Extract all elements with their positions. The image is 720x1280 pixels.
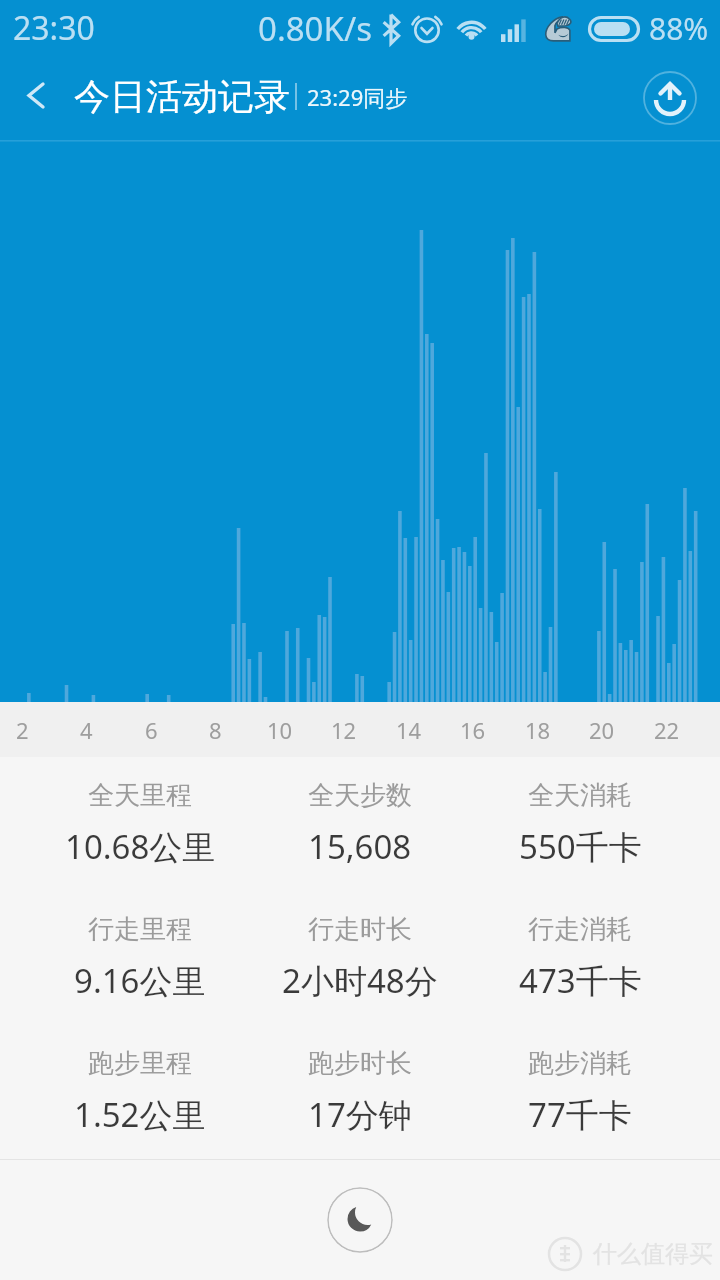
staticText: 行走时长 — [308, 913, 412, 946]
staticText: 什么值得买 — [593, 1239, 713, 1269]
staticText: 0.80K/s — [258, 6, 372, 51]
staticText: 77千卡 — [528, 1092, 632, 1137]
button[interactable]: 跑步消耗 — [470, 1025, 690, 1159]
staticText: 18 — [525, 715, 551, 745]
staticText: 全天步数 — [308, 779, 412, 812]
staticText: 今日活动记录 — [74, 74, 290, 119]
staticText: 12 — [331, 715, 357, 745]
staticText: 14 — [396, 715, 422, 745]
staticText: 行走里程 — [88, 913, 192, 946]
button[interactable]: 行走里程 — [30, 891, 250, 1025]
button[interactable]: 全天里程 — [30, 757, 250, 891]
staticText: 550千卡 — [519, 824, 642, 869]
staticText: 15,608 — [308, 824, 412, 869]
staticText: 9.16公里 — [74, 958, 206, 1003]
staticText: 跑步时长 — [308, 1047, 412, 1080]
staticText: 跑步里程 — [88, 1047, 192, 1080]
staticText: 23:29同步 — [307, 82, 408, 112]
button[interactable]: 跑步时长 — [250, 1025, 470, 1159]
button[interactable]: Sleep mode — [327, 1187, 393, 1253]
staticText: 行走消耗 — [528, 913, 632, 946]
staticText: 2 — [16, 715, 29, 745]
staticText: 10.68公里 — [65, 824, 216, 869]
staticText: 全天里程 — [88, 779, 192, 812]
staticText: 跑步消耗 — [528, 1047, 632, 1080]
staticText: 8 — [209, 715, 222, 745]
button[interactable]: 跑步里程 — [30, 1025, 250, 1159]
staticText: 20 — [589, 715, 615, 745]
staticText: 1.52公里 — [74, 1092, 206, 1137]
staticText: 23:30 — [13, 6, 95, 50]
button[interactable]: Back — [0, 56, 72, 140]
button[interactable]: 全天步数 — [250, 757, 470, 891]
button[interactable]: Sync — [635, 63, 705, 133]
button[interactable]: 全天消耗 — [470, 757, 690, 891]
staticText: 22 — [654, 715, 680, 745]
button[interactable]: 行走时长 — [250, 891, 470, 1025]
staticText: 10 — [267, 715, 293, 745]
staticText: 88% — [649, 8, 709, 49]
staticText: 4 — [80, 715, 93, 745]
staticText: 2小时48分 — [282, 958, 438, 1003]
button[interactable]: 行走消耗 — [470, 891, 690, 1025]
button[interactable]: Daily step chart — [0, 140, 720, 702]
staticText: 473千卡 — [519, 958, 642, 1003]
staticText: 全天消耗 — [528, 779, 632, 812]
staticText: 17分钟 — [308, 1092, 412, 1137]
staticText: 6 — [145, 715, 158, 745]
staticText: 16 — [460, 715, 486, 745]
